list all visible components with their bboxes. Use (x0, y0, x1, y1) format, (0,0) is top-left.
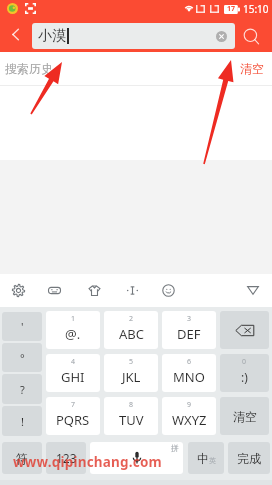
staticText: 4 (71, 357, 76, 367)
button[interactable]: 小漠 (32, 23, 235, 49)
button[interactable]: Backspace (220, 311, 269, 349)
button[interactable]: Assistant (37, 274, 71, 307)
staticText: 清空 (240, 61, 264, 76)
staticText: 17 (227, 4, 236, 14)
staticText: www.qipinchang.com (13, 453, 162, 471)
staticText: ? (20, 382, 25, 397)
staticText: GHI (61, 368, 85, 386)
staticText: MNO (173, 368, 205, 386)
staticText: ° (20, 350, 25, 365)
button[interactable]: ° (2, 343, 42, 372)
staticText: ! (21, 414, 24, 429)
staticText: 5 (129, 357, 134, 367)
staticText: 2 (129, 314, 134, 324)
button[interactable]: 0 (220, 354, 269, 392)
staticText: WXYZ (172, 411, 207, 429)
button[interactable]: Hide keyboard (235, 274, 271, 307)
staticText: JKL (122, 368, 141, 386)
button[interactable]: Cursor (115, 274, 149, 307)
staticText: 拼 (171, 443, 179, 453)
staticText: DEF (177, 325, 201, 343)
staticText: 中 (197, 451, 209, 466)
button[interactable]: 8 (104, 397, 158, 435)
staticText: 英 (209, 456, 216, 465)
staticText: 0 (242, 357, 247, 367)
staticText: ABC (119, 325, 144, 343)
button[interactable]: 6 (162, 354, 216, 392)
button[interactable]: Clear text (216, 31, 227, 42)
staticText: 完成 (237, 451, 261, 466)
staticText: 15:10 (243, 2, 269, 16)
button[interactable]: Theme (77, 274, 111, 307)
button[interactable]: Search (236, 17, 272, 52)
staticText: 123 (56, 450, 77, 466)
staticText: 3 (187, 314, 192, 324)
button[interactable]: 完成 (228, 442, 270, 474)
staticText: 7 (71, 400, 76, 410)
button[interactable]: 9 (162, 397, 216, 435)
staticText: 小漠 (38, 27, 66, 45)
button[interactable]: 符 (2, 442, 42, 474)
staticText: :) (241, 369, 248, 385)
button[interactable]: ' (2, 312, 42, 341)
button[interactable]: 清空 (220, 397, 269, 435)
button[interactable]: 5 (104, 354, 158, 392)
staticText: PQRS (56, 411, 90, 429)
staticText: 8 (129, 400, 134, 410)
button[interactable]: 7 (46, 397, 100, 435)
staticText: 搜索历史 (5, 61, 53, 76)
staticText: 1 (71, 314, 76, 324)
staticText: @. (65, 325, 81, 343)
staticText: 6 (187, 357, 192, 367)
staticText: 清空 (233, 409, 257, 424)
button[interactable]: 4 (46, 354, 100, 392)
staticText: 符 (16, 451, 28, 466)
button[interactable]: 1 (46, 311, 100, 349)
button[interactable]: Space, voice input (90, 442, 183, 474)
button[interactable]: 3 (162, 311, 216, 349)
button[interactable]: Emoji (151, 274, 185, 307)
button[interactable]: 中 (188, 442, 224, 474)
staticText: ' (21, 319, 24, 334)
button[interactable]: 清空 (240, 61, 264, 76)
button[interactable]: ! (2, 406, 42, 436)
staticText: 9 (187, 400, 192, 410)
button[interactable]: Settings (1, 274, 35, 307)
button[interactable]: 2 (104, 311, 158, 349)
button[interactable]: ? (2, 374, 42, 404)
staticText: TUV (119, 411, 144, 429)
button[interactable]: Back (0, 17, 31, 52)
button[interactable]: 123 (46, 442, 86, 474)
